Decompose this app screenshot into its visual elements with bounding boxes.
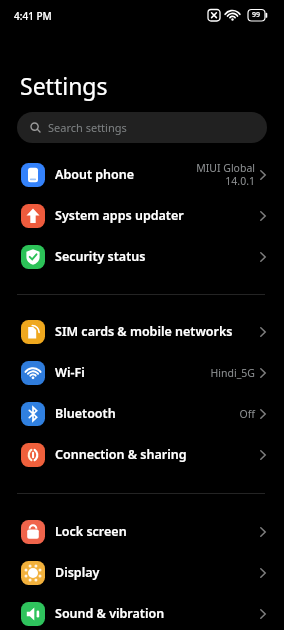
staticText: Display xyxy=(55,564,255,581)
staticText: 4:41 PM xyxy=(14,9,52,23)
staticText: Settings xyxy=(20,70,108,101)
staticText: Search settings xyxy=(48,120,127,135)
staticText: Sound & vibration xyxy=(55,605,255,622)
staticText: Connection & sharing xyxy=(55,446,255,463)
button[interactable]: Search settings xyxy=(17,112,267,143)
staticText: Off xyxy=(239,407,255,421)
staticText: Security status xyxy=(55,248,255,265)
button[interactable]: Connection & sharing xyxy=(0,434,284,475)
staticText: Hindi_5G xyxy=(210,366,255,380)
button[interactable]: Security status xyxy=(0,236,284,277)
button[interactable]: Lock screen xyxy=(0,511,284,552)
staticText: SIM cards & mobile networks xyxy=(55,323,255,340)
button[interactable]: Sound & vibration xyxy=(0,593,284,630)
staticText: System apps updater xyxy=(55,207,255,224)
staticText: Bluetooth xyxy=(55,405,239,422)
button[interactable]: System apps updater xyxy=(0,195,284,236)
staticText: Wi-Fi xyxy=(55,364,210,381)
button[interactable]: SIM cards & mobile networks xyxy=(0,311,284,352)
button[interactable]: Wi-Fi xyxy=(0,352,284,393)
button[interactable]: About phone xyxy=(0,154,284,195)
staticText: Lock screen xyxy=(55,523,255,540)
button[interactable]: Bluetooth xyxy=(0,393,284,434)
staticText: About phone xyxy=(55,166,196,183)
staticText: MIUI Global 14.0.1 xyxy=(196,161,255,188)
staticText: 99 xyxy=(252,10,261,20)
button[interactable]: Display xyxy=(0,552,284,593)
